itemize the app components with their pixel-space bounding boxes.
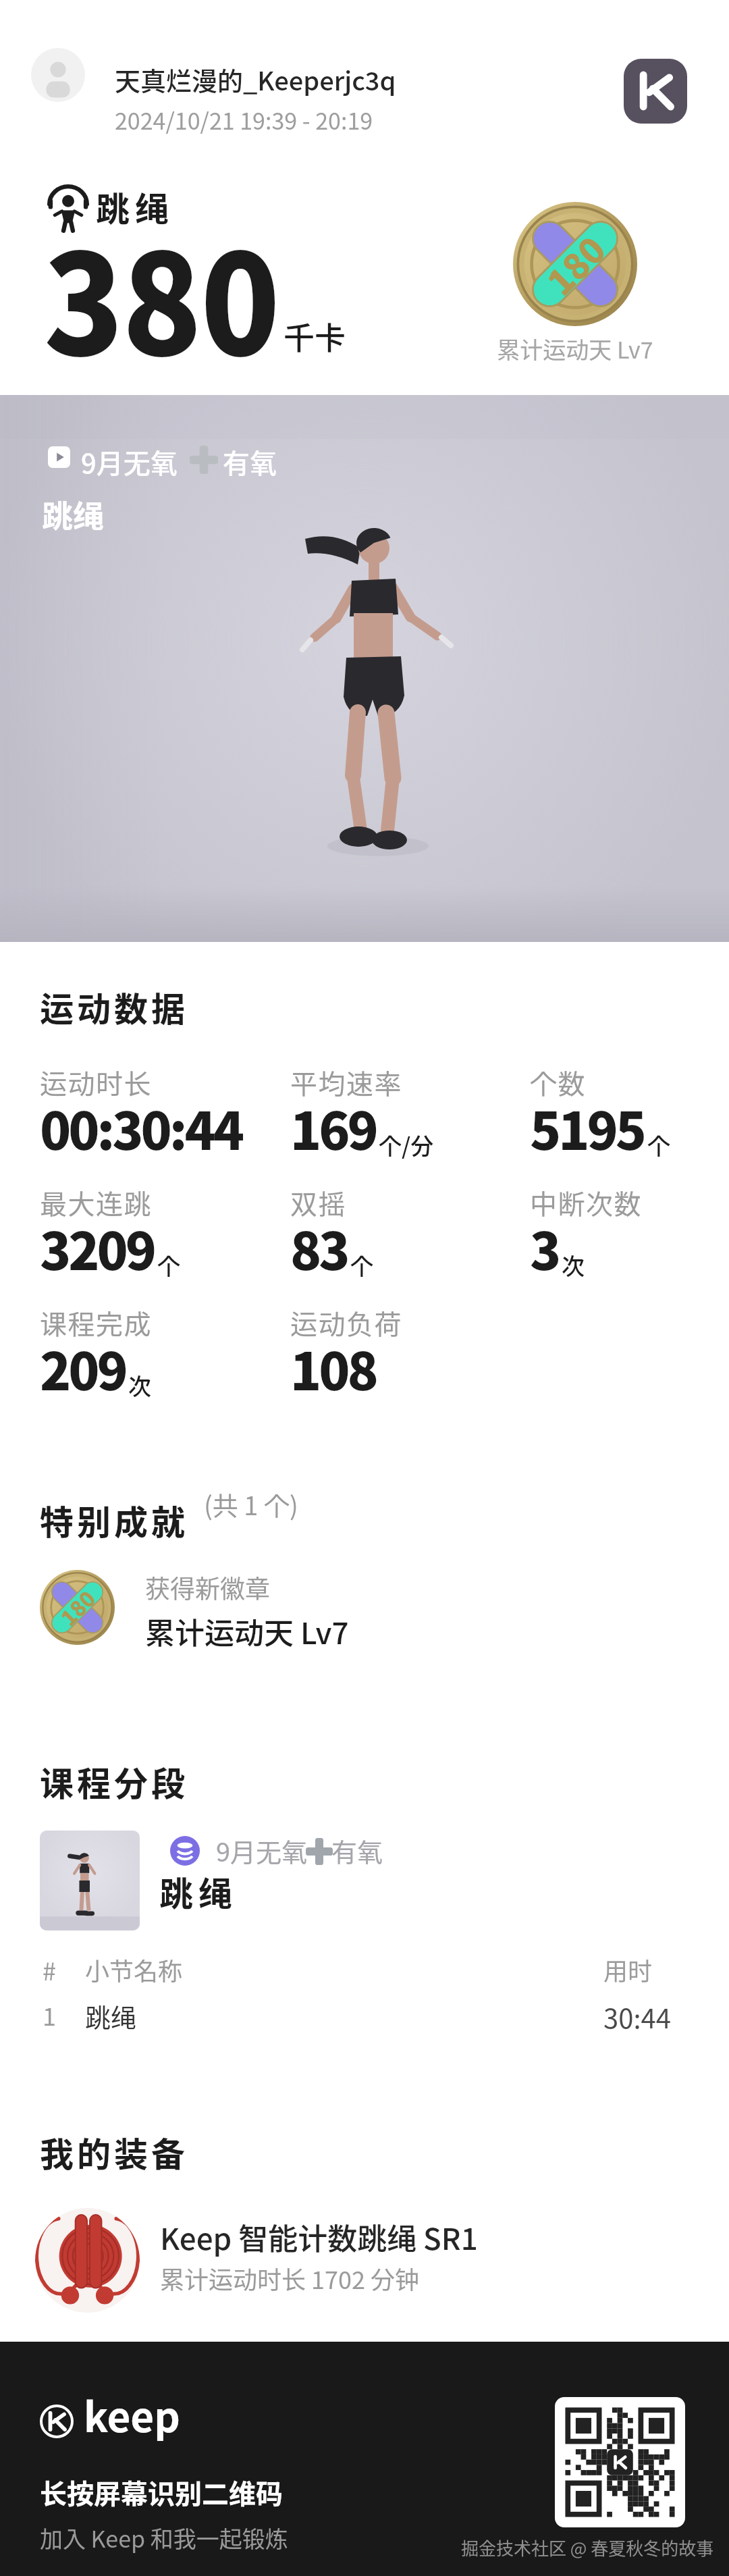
staticText: Keep 智能计数跳绳 SR1 [160,2215,478,2259]
button[interactable] [31,48,85,102]
button[interactable] [624,59,687,124]
staticText: 次 [128,1369,151,1402]
staticText: 个 [647,1128,670,1161]
staticText: # [43,1952,56,1987]
staticText: 169 [290,1090,376,1165]
staticText: 我的装备 [40,2128,188,2176]
staticText: 双摇 [290,1183,346,1222]
staticText: 平均速率 [290,1063,402,1102]
staticText: 次 [562,1248,585,1282]
button[interactable] [555,2397,685,2527]
staticText: 千卡 [283,313,346,359]
staticText: 180 [534,224,616,305]
staticText: 累计运动天 Lv7 [473,332,678,365]
staticText: 有氧 [331,1832,383,1869]
staticText: 中断次数 [530,1183,642,1222]
staticText: keep [84,2385,180,2444]
button[interactable] [27,1992,702,2039]
staticText: 跳绳 [96,182,174,231]
staticText: 83 [290,1211,348,1285]
staticText: 有氧 [223,442,277,481]
staticText: 2024/10/21 19:39 - 20:19 [115,103,373,136]
staticText: 108 [290,1331,376,1405]
staticText: 209 [40,1331,126,1405]
staticText: 特别成就 [40,1496,188,1544]
staticText: (共 1 个) [204,1486,298,1523]
staticText: 3 [530,1211,559,1285]
staticText: 1 [43,1997,56,2032]
staticText: 380 [44,194,279,395]
button[interactable] [27,2203,702,2317]
staticText: 跳绳 [159,1867,238,1916]
staticText: 课程完成 [40,1303,152,1342]
staticText: 天真烂漫的_Keeperjc3q [115,61,396,98]
staticText: 运动负荷 [290,1303,402,1342]
staticText: 跳绳 [85,1997,137,2034]
staticText: 最大连跳 [40,1183,152,1222]
staticText: 9月无氧 [216,1832,308,1869]
staticText: 运动数据 [40,982,188,1031]
staticText: 00:30:44 [40,1090,242,1165]
staticText: 9月无氧 [81,442,178,481]
staticText: 获得新徽章 [145,1569,270,1606]
staticText: 个 [157,1248,180,1282]
staticText: 个数 [530,1063,586,1102]
staticText: 30:44 [603,1997,671,2036]
staticText: 掘金技术社区 @ 春夏秋冬的故事 [461,2535,714,2560]
staticText: 跳绳 [42,492,104,537]
staticText: 运动时长 [40,1063,152,1102]
staticText: 180 [53,1583,102,1632]
staticText: 长按屏幕识别二维码 [40,2473,283,2512]
staticText: 个 [350,1248,373,1282]
staticText: 用时 [603,1952,653,1987]
button[interactable] [35,2208,140,2313]
staticText: 累计运动天 Lv7 [145,1610,349,1653]
staticText: 课程分段 [40,1757,188,1806]
staticText: 累计运动时长 1702 分钟 [160,2261,420,2296]
staticText: 3209 [40,1211,155,1285]
staticText: 个/分 [379,1128,434,1161]
button[interactable] [40,1831,140,1930]
staticText: 加入 Keep 和我一起锻炼 [40,2521,288,2554]
staticText: 小节名称 [85,1952,183,1987]
staticText: 5195 [530,1090,645,1165]
